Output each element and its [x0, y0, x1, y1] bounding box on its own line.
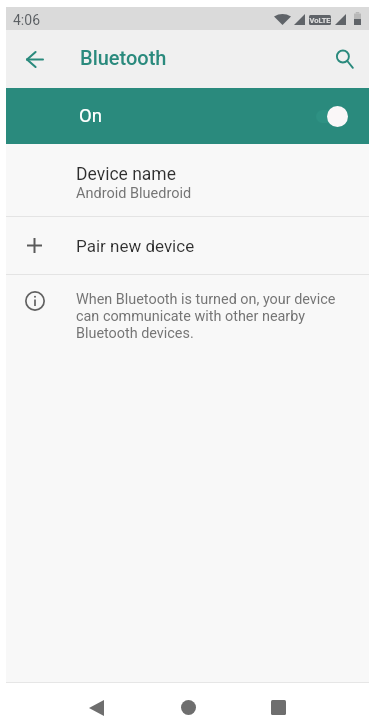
staticText: Device name: [76, 164, 176, 185]
button[interactable]: Device name: [6, 144, 369, 216]
button[interactable]: Back: [13, 30, 56, 88]
button[interactable]: Recents: [246, 691, 310, 724]
button[interactable]: Search: [322, 30, 367, 88]
staticText: On: [79, 105, 102, 127]
button[interactable]: Back: [64, 691, 128, 724]
staticText: Bluetooth: [80, 46, 167, 69]
button[interactable]: On: [6, 88, 369, 144]
staticText: VoLTE: [309, 16, 331, 25]
staticText: When Bluetooth is turned on, your device…: [76, 291, 336, 342]
staticText: Pair new device: [76, 236, 195, 256]
button[interactable]: Pair new device: [6, 217, 369, 274]
button[interactable]: Home: [156, 691, 220, 724]
staticText: Android Bluedroid: [76, 185, 192, 202]
staticText: 4:06: [13, 12, 40, 28]
